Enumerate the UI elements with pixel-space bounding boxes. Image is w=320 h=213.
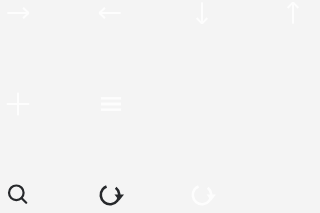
button[interactable]: Search	[4, 181, 32, 209]
button[interactable]: Menu	[97, 90, 125, 118]
button[interactable]: Reload	[188, 181, 216, 209]
button[interactable]: Refresh	[96, 181, 124, 209]
